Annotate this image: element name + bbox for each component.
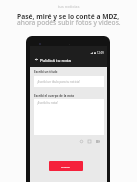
staticText: 12:09	[97, 51, 104, 55]
staticText: Publicá tu nota	[40, 57, 71, 63]
staticText: ahora podés subir fotos y videos.	[17, 18, 121, 27]
button[interactable]: Publicar	[49, 161, 83, 171]
staticText: ¡Escribí un título para tu noticia!	[37, 80, 80, 84]
staticText: ¡Escribí tu nota!	[37, 101, 58, 105]
button[interactable]: ¡Escribí un título para tu noticia!	[34, 76, 104, 87]
staticText: Publicar	[61, 165, 71, 168]
staticText: Escribí un título	[34, 70, 58, 74]
button[interactable]: Take photo	[80, 140, 83, 143]
button[interactable]: Back	[35, 58, 38, 61]
button[interactable]: Add image	[88, 140, 91, 143]
button[interactable]: ¡Escribí tu nota!	[34, 99, 104, 135]
staticText: Escribí el cuerpo de la nota	[34, 94, 75, 98]
staticText: tus noticias	[58, 4, 80, 9]
button[interactable]: Add video	[96, 140, 100, 143]
staticText: Pasé, miré y se lo conté a MDZ,	[17, 12, 120, 21]
